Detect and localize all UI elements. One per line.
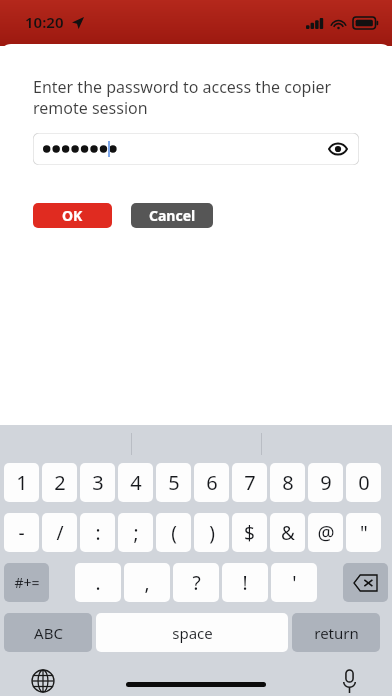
button[interactable]: 7 [232,463,267,502]
staticText: @ [317,520,335,546]
button[interactable]: 3 [80,463,115,502]
button[interactable]: ) [194,513,229,552]
button[interactable]: 1 [4,463,39,502]
staticText: ) [209,520,215,546]
button[interactable]: " [346,513,381,552]
staticText: 6 [206,469,218,496]
button[interactable]: / [42,513,77,552]
staticText: Enter the password to access the copier … [33,76,359,119]
staticText: 0 [358,469,370,496]
staticText: 2 [54,469,66,496]
staticText: $ [244,520,255,546]
button[interactable]: 4 [118,463,153,502]
button[interactable]: Show password [33,133,359,165]
staticText: Cancel [149,206,196,225]
button[interactable]: - [4,513,39,552]
button[interactable]: Change keyboard [28,666,58,696]
button[interactable]: . [75,563,121,602]
button[interactable]: Dictation [334,666,364,696]
button[interactable]: OK [33,203,112,228]
staticText: ; [133,520,139,546]
staticText: / [56,520,64,546]
button[interactable]: ? [173,563,219,602]
staticText: #+= [14,573,40,592]
staticText: ! [242,570,248,596]
staticText: ABC [34,623,63,643]
button[interactable]: ABC [4,613,92,652]
staticText: 7 [244,469,256,496]
staticText: - [18,520,25,546]
staticText: . [95,570,101,596]
button[interactable]: 2 [42,463,77,502]
staticText: 3 [92,469,104,496]
staticText: 10:20 [25,12,64,32]
button[interactable]: 6 [194,463,229,502]
staticText: ? [192,570,201,596]
button[interactable]: , [124,563,170,602]
staticText: ( [171,520,177,546]
button[interactable]: ( [156,513,191,552]
staticText: ' [292,570,297,596]
staticText: & [281,520,295,546]
staticText: return [314,623,359,643]
staticText: , [144,570,150,596]
staticText: 8 [282,469,294,496]
staticText: 1 [16,469,28,496]
button[interactable]: ' [271,563,317,602]
staticText: 9 [320,469,332,496]
staticText: OK [62,206,83,225]
button[interactable]: Cancel [131,203,213,228]
button[interactable]: 8 [270,463,305,502]
button[interactable]: ; [118,513,153,552]
button[interactable]: Backspace [343,563,388,602]
button[interactable]: ! [222,563,268,602]
button[interactable]: : [80,513,115,552]
button[interactable]: 5 [156,463,191,502]
button[interactable]: #+= [4,563,49,602]
button[interactable]: 9 [308,463,343,502]
button[interactable]: & [270,513,305,552]
staticText: 4 [130,469,142,496]
staticText: " [360,520,368,546]
staticText: space [172,623,213,643]
button[interactable]: @ [308,513,343,552]
staticText: 5 [168,469,180,496]
button[interactable]: space [96,613,288,652]
button[interactable]: 0 [346,463,381,502]
button[interactable]: $ [232,513,267,552]
button[interactable]: return [292,613,380,652]
staticText: : [95,520,101,546]
button[interactable]: Show password [325,136,351,162]
